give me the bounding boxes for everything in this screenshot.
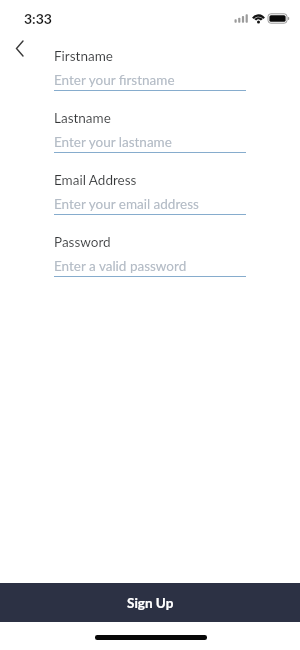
button[interactable] [8,34,36,62]
button[interactable]: Firstname [54,50,246,91]
button[interactable]: Lastname [54,112,246,153]
staticText: 3:33 [24,10,52,27]
staticText: Firstname [54,48,113,64]
button[interactable]: Password [54,236,246,277]
staticText: Email Address [54,172,137,188]
staticText: Enter your email address [54,196,199,212]
staticText: Enter your lastname [54,134,172,150]
button[interactable]: Sign Up [0,583,300,622]
staticText: Sign Up [127,595,174,611]
staticText: Password [54,234,111,250]
staticText: Enter a valid password [54,258,187,274]
staticText: Lastname [54,110,111,126]
staticText: Enter your firstname [54,72,175,88]
button[interactable]: Email Address [54,174,246,215]
